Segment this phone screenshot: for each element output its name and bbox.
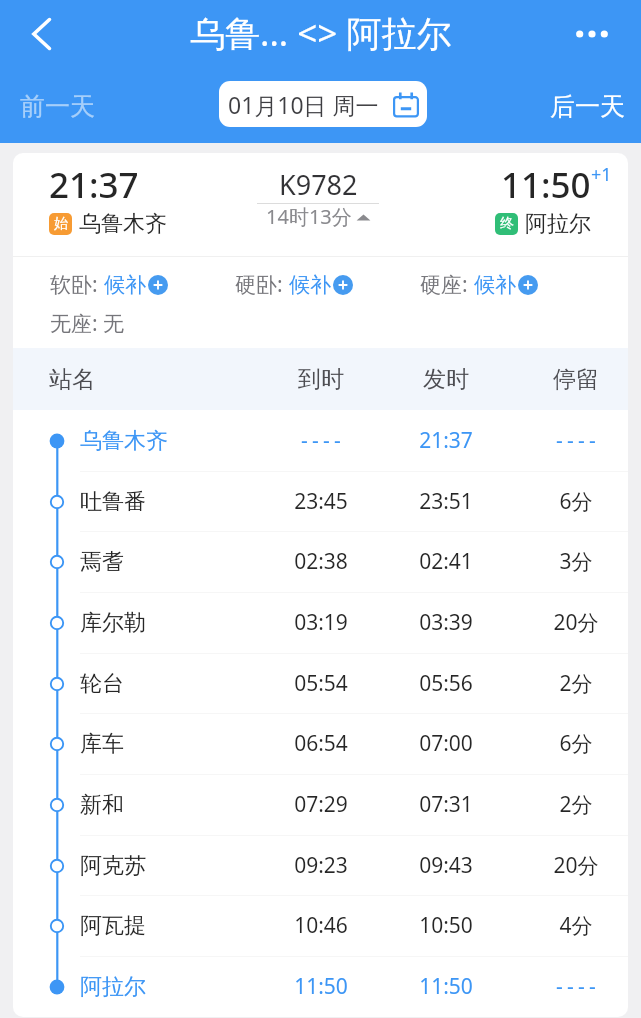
staticText: 11:50	[294, 972, 348, 1001]
staticText: 4分	[559, 911, 593, 940]
staticText: 07:29	[294, 790, 348, 819]
staticText: 23:45	[294, 487, 348, 516]
staticText: 06:54	[294, 729, 348, 758]
staticText: 停留	[553, 365, 599, 394]
staticText: 到时	[298, 365, 344, 394]
staticText: 20分	[553, 851, 599, 880]
staticText: 始	[54, 215, 68, 233]
staticText: 05:56	[419, 669, 473, 698]
staticText: 02:41	[419, 547, 473, 576]
staticText: 3分	[559, 547, 593, 576]
staticText: 10:50	[419, 911, 473, 940]
staticText: 软卧:	[50, 270, 104, 299]
staticText: 焉耆	[80, 548, 124, 576]
button[interactable]: 乌鲁木齐	[13, 410, 628, 471]
staticText: 乌鲁木齐	[79, 210, 167, 238]
button[interactable]: 阿克苏	[13, 835, 628, 896]
staticText: 乌鲁木齐	[80, 427, 168, 455]
button[interactable]: Back	[14, 6, 70, 62]
staticText: 发时	[423, 365, 469, 394]
staticText: 21:37	[49, 161, 139, 209]
button[interactable]: 新和	[13, 774, 628, 835]
staticText: 终	[500, 215, 514, 233]
staticText: 02:38	[294, 547, 348, 576]
button[interactable]: 硬卧:	[235, 270, 420, 299]
staticText: 07:00	[419, 729, 473, 758]
staticText: 库尔勒	[80, 609, 146, 637]
staticText: +1	[591, 162, 612, 187]
staticText: 6分	[559, 487, 593, 516]
staticText: 库车	[80, 730, 124, 758]
button[interactable]: 阿拉尔	[13, 956, 628, 1017]
staticText: 乌鲁... <> 阿拉尔	[190, 9, 452, 57]
button[interactable]: 焉耆	[13, 531, 628, 592]
staticText: ----	[301, 426, 345, 455]
staticText: 候补	[474, 272, 516, 298]
button[interactable]: 吐鲁番	[13, 471, 628, 532]
button[interactable]: 库尔勒	[13, 592, 628, 653]
button[interactable]: 软卧:	[50, 270, 235, 299]
button[interactable]: 01月10日 周一	[219, 81, 427, 127]
staticText: 07:31	[419, 790, 473, 819]
staticText: 阿拉尔	[80, 973, 146, 1001]
staticText: 03:19	[294, 608, 348, 637]
staticText: 新和	[80, 791, 124, 819]
staticText: 20分	[553, 608, 599, 637]
button[interactable]: 后一天	[534, 79, 640, 133]
staticText: 14时13分	[266, 203, 352, 230]
staticText: 2分	[559, 790, 593, 819]
staticText: ----	[556, 972, 600, 1001]
staticText: 后一天	[550, 91, 625, 122]
staticText: 11:50	[419, 972, 473, 1001]
staticText: 21:37	[419, 426, 473, 455]
staticText: 轮台	[80, 670, 124, 698]
staticText: 6分	[559, 729, 593, 758]
button[interactable]: 阿瓦提	[13, 895, 628, 956]
staticText: 硬卧:	[235, 270, 289, 299]
button[interactable]: 轮台	[13, 653, 628, 714]
staticText: 候补	[104, 272, 146, 298]
button[interactable]: 库车	[13, 713, 628, 774]
button[interactable]: 前一天	[4, 79, 110, 133]
staticText: 阿拉尔	[525, 210, 591, 238]
staticText: 阿克苏	[80, 852, 146, 880]
staticText: 候补	[289, 272, 331, 298]
staticText: 23:51	[419, 487, 473, 516]
staticText: 站名	[49, 365, 95, 394]
staticText: K9782	[279, 166, 358, 203]
staticText: 10:46	[294, 911, 348, 940]
staticText: 11:50	[501, 161, 591, 209]
staticText: 前一天	[20, 91, 95, 122]
staticText: 05:54	[294, 669, 348, 698]
staticText: 无座: 无	[50, 309, 125, 338]
staticText: ----	[556, 426, 600, 455]
staticText: 09:43	[419, 851, 473, 880]
staticText: 2分	[559, 669, 593, 698]
button[interactable]: More options	[564, 6, 620, 62]
staticText: 阿瓦提	[80, 912, 146, 940]
button[interactable]: 硬座:	[420, 270, 605, 299]
staticText: 03:39	[419, 608, 473, 637]
staticText: 吐鲁番	[80, 488, 146, 516]
staticText: 01月10日 周一	[228, 89, 379, 120]
staticText: 09:23	[294, 851, 348, 880]
staticText: 硬座:	[420, 270, 474, 299]
